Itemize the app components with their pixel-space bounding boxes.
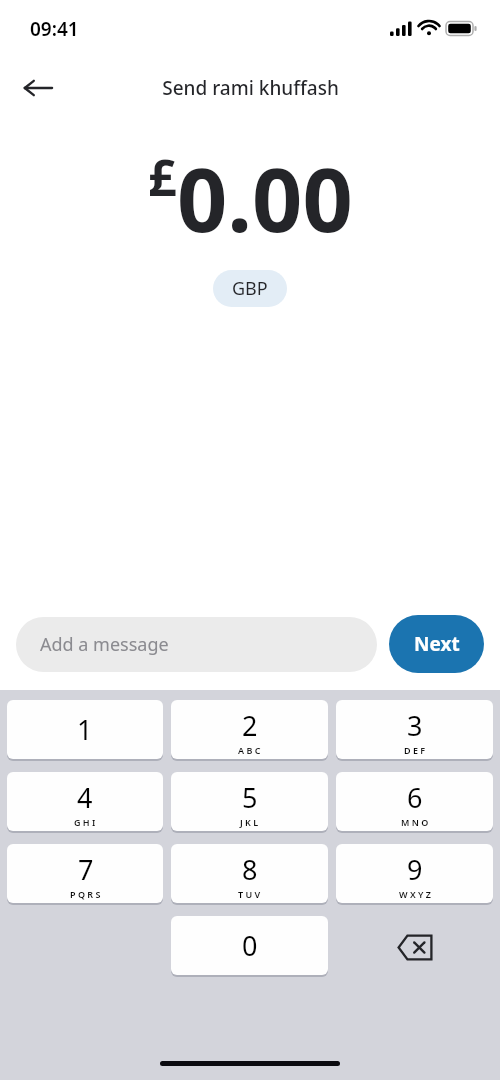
staticText: GBP <box>232 276 268 301</box>
staticText: 09:41 <box>30 16 79 42</box>
staticText: G H I <box>74 816 96 828</box>
button[interactable]: 5 <box>171 772 328 831</box>
button[interactable]: GBP <box>213 270 287 307</box>
staticText: 0.00 <box>177 138 353 258</box>
button[interactable]: Delete <box>336 916 493 978</box>
staticText: 8 <box>242 851 258 888</box>
button[interactable]: 9 <box>336 844 493 903</box>
staticText: 3 <box>407 707 423 744</box>
staticText: 5 <box>242 779 258 816</box>
button[interactable]: Next <box>389 615 484 673</box>
staticText: 6 <box>407 779 423 816</box>
staticText: P Q R S <box>70 888 101 900</box>
staticText: A B C <box>238 744 261 756</box>
button[interactable]: 3 <box>336 700 493 759</box>
staticText: 0 <box>242 927 258 964</box>
staticText: W X Y Z <box>399 888 431 900</box>
button[interactable]: 4 <box>7 772 163 831</box>
staticText: Send rami khuffash <box>162 75 339 101</box>
staticText: 4 <box>77 779 93 816</box>
button[interactable]: 0 <box>171 916 328 975</box>
staticText: Add a message <box>40 632 169 657</box>
button[interactable]: 6 <box>336 772 493 831</box>
staticText: J K L <box>240 816 259 828</box>
staticText: 1 <box>77 711 93 748</box>
staticText: £ <box>148 143 177 211</box>
staticText: Next <box>414 631 460 657</box>
button[interactable]: Back <box>13 63 63 113</box>
staticText: 9 <box>407 851 423 888</box>
staticText: T U V <box>238 888 261 900</box>
button[interactable]: 1 <box>7 700 163 759</box>
staticText: 2 <box>242 707 258 744</box>
staticText: 7 <box>78 851 94 888</box>
button[interactable]: 2 <box>171 700 328 759</box>
button[interactable]: 7 <box>7 844 163 903</box>
button[interactable]: Add a message <box>16 617 377 672</box>
button[interactable]: 8 <box>171 844 328 903</box>
staticText: M N O <box>401 816 429 828</box>
staticText: D E F <box>404 744 426 756</box>
